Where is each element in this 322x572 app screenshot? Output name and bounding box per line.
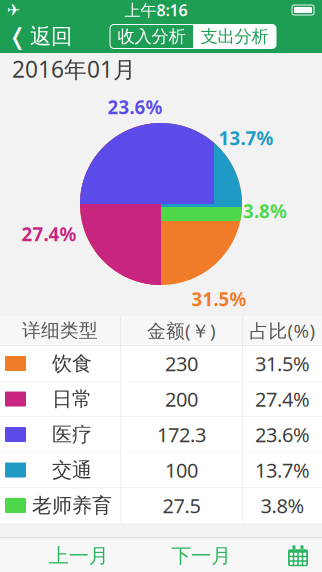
staticText: 金额(￥)	[147, 318, 216, 343]
staticText: 23.6%	[107, 95, 162, 119]
staticText: 收入分析	[117, 26, 185, 47]
staticText: 27.4%	[21, 222, 76, 246]
button[interactable]: 选择月份	[280, 541, 316, 570]
staticText: 27.5	[162, 492, 200, 519]
staticText: ❬	[8, 24, 27, 49]
staticText: 200	[165, 386, 198, 412]
staticText: 上午8:16	[124, 0, 187, 21]
staticText: 23.6%	[255, 421, 310, 448]
staticText: 2016年01月	[12, 54, 136, 84]
staticText: ✈	[7, 1, 20, 19]
button[interactable]: 下一月	[157, 537, 245, 572]
button[interactable]: 交通	[0, 452, 322, 487]
button[interactable]: 日常	[0, 381, 322, 416]
button[interactable]: 收入分析	[110, 24, 193, 48]
staticText: 3.8%	[260, 492, 304, 519]
staticText: 详细类型	[22, 319, 98, 342]
button[interactable]: 上一月	[35, 537, 123, 572]
staticText: 支出分析	[200, 26, 268, 47]
staticText: 230	[165, 350, 198, 377]
staticText: 下一月	[171, 543, 231, 568]
staticText: 100	[165, 457, 198, 483]
staticText: 日常	[52, 387, 92, 411]
staticText: 31.5%	[255, 350, 310, 377]
staticText: 返回	[30, 23, 72, 50]
staticText: 占比(%)	[249, 318, 315, 343]
staticText: 13.7%	[255, 457, 310, 483]
staticText: 31.5%	[191, 287, 246, 311]
staticText: 上一月	[49, 543, 109, 568]
button[interactable]: 饮食	[0, 346, 322, 381]
button[interactable]: ❬	[0, 17, 72, 56]
staticText: 饮食	[52, 351, 92, 376]
button[interactable]: 支出分析	[193, 24, 276, 48]
button[interactable]: 老师养育	[0, 488, 322, 523]
staticText: 老师养育	[32, 493, 112, 518]
staticText: 交通	[52, 458, 92, 482]
staticText: 医疗	[52, 422, 92, 447]
staticText: 13.7%	[218, 126, 273, 150]
button[interactable]: 医疗	[0, 417, 322, 452]
staticText: 172.3	[157, 421, 206, 448]
staticText: 27.4%	[255, 386, 310, 412]
staticText: 3.8%	[243, 199, 287, 223]
